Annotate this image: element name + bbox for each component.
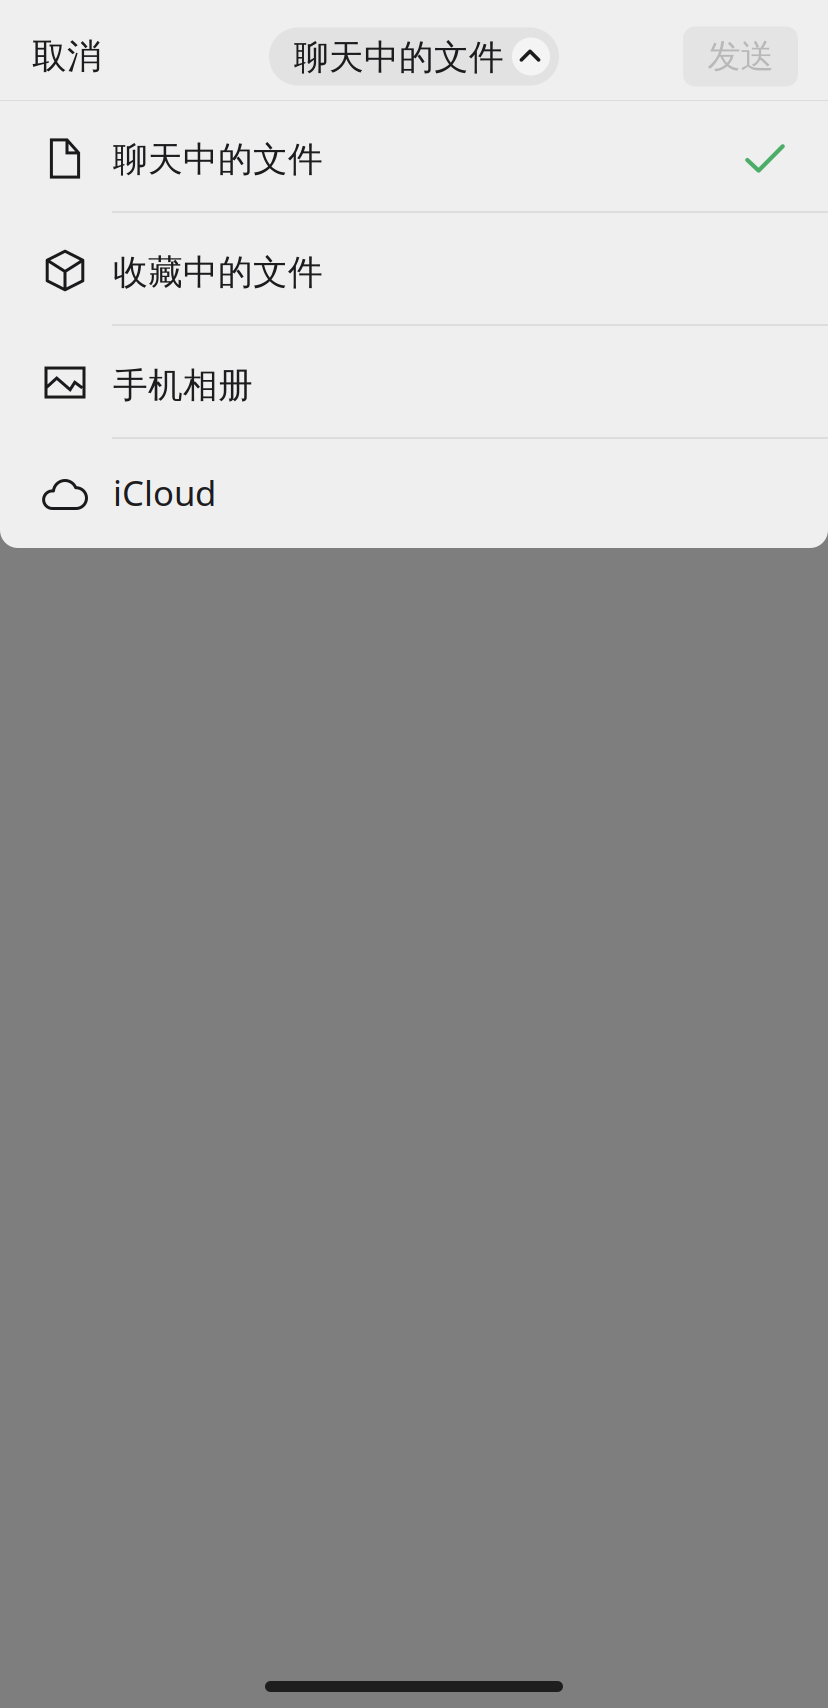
staticText: 手机相册 [113,364,253,407]
button[interactable]: 发送 [683,26,798,86]
button[interactable]: 关闭菜单 [0,0,828,1708]
button[interactable]: 手机相册 [0,325,828,437]
button[interactable]: 收藏中的文件 [0,212,828,324]
button[interactable]: iCloud [0,438,828,550]
staticText: 收藏中的文件 [113,251,323,294]
staticText: iCloud [113,469,216,515]
button[interactable]: 聊天中的文件 [0,99,828,211]
staticText: 聊天中的文件 [113,138,323,181]
staticText: 发送 [707,36,773,77]
button[interactable]: 取消 [0,13,134,100]
button[interactable]: 聊天中的文件 [269,27,559,85]
staticText: 取消 [32,35,102,78]
staticText: 聊天中的文件 [294,36,504,79]
